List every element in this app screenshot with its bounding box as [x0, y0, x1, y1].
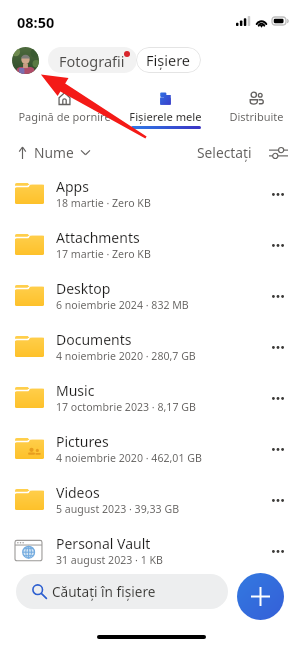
- button[interactable]: Filter options: [268, 142, 289, 163]
- staticText: 4 noiembrie 2020 · 280,7 GB: [56, 349, 196, 363]
- staticText: Music: [56, 381, 95, 400]
- button[interactable]: Music: [0, 372, 299, 423]
- button[interactable]: Fișierele mele: [117, 86, 213, 130]
- staticText: Fișierele mele: [129, 109, 202, 124]
- button[interactable]: Add: [237, 573, 284, 620]
- staticText: Documents: [56, 330, 132, 349]
- staticText: Attachments: [56, 228, 140, 247]
- staticText: 08:50: [17, 12, 55, 32]
- button[interactable]: Pictures: [0, 423, 299, 474]
- button[interactable]: Nume: [15, 140, 94, 165]
- button[interactable]: More options for Videos: [260, 477, 299, 523]
- button[interactable]: More options for Pictures: [260, 426, 299, 472]
- button[interactable]: More options for Apps: [260, 171, 299, 217]
- button[interactable]: Desktop: [0, 270, 299, 321]
- staticText: Căutați în fișiere: [52, 582, 156, 601]
- staticText: 4 noiembrie 2020 · 462,01 GB: [56, 451, 202, 465]
- staticText: Fișiere: [146, 50, 191, 70]
- staticText: Desktop: [56, 279, 111, 298]
- staticText: Pictures: [56, 432, 109, 451]
- staticText: Videos: [56, 483, 100, 502]
- button[interactable]: Fișiere: [136, 47, 201, 73]
- staticText: 31 august 2023 · 1 KB: [56, 553, 163, 567]
- button[interactable]: Fotografii: [48, 47, 137, 73]
- button[interactable]: Selectați: [194, 140, 255, 165]
- button[interactable]: More options for Desktop: [260, 273, 299, 319]
- button[interactable]: More options for Personal Vault: [260, 528, 299, 574]
- button[interactable]: Documents: [0, 321, 299, 372]
- staticText: Nume: [34, 143, 74, 162]
- staticText: 18 martie · Zero KB: [56, 196, 151, 210]
- staticText: 6 noiembrie 2024 · 832 MB: [56, 298, 189, 312]
- button[interactable]: Apps: [0, 168, 299, 219]
- staticText: 17 octombrie 2023 · 8,17 GB: [56, 400, 196, 414]
- button[interactable]: More options for Music: [260, 375, 299, 421]
- button[interactable]: Attachments: [0, 219, 299, 270]
- staticText: Selectați: [197, 143, 252, 162]
- staticText: Personal Vault: [56, 534, 151, 553]
- staticText: Distribuite: [229, 109, 284, 124]
- button[interactable]: Pagină de pornire: [16, 86, 112, 130]
- button[interactable]: Personal Vault: [0, 525, 299, 576]
- button[interactable]: Account: [12, 47, 39, 74]
- staticText: Apps: [56, 177, 89, 196]
- button[interactable]: More options for Documents: [260, 324, 299, 370]
- button[interactable]: Distribuite: [208, 86, 299, 130]
- staticText: 17 martie · Zero KB: [56, 247, 151, 261]
- button[interactable]: More options for Attachments: [260, 222, 299, 268]
- staticText: Fotografii: [59, 51, 125, 71]
- staticText: Pagină de pornire: [18, 109, 111, 124]
- button[interactable]: Căutați în fișiere: [16, 574, 228, 609]
- button[interactable]: Videos: [0, 474, 299, 525]
- staticText: 5 august 2023 · 39,33 GB: [56, 502, 180, 516]
